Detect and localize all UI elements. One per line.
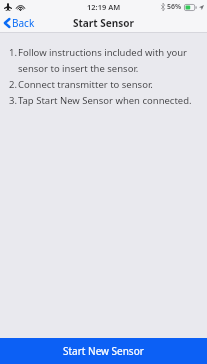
- staticText: Tap Start New Sensor when connected.: [18, 94, 192, 107]
- staticText: 1.: [9, 46, 17, 59]
- staticText: Connect transmitter to sensor.: [18, 78, 153, 91]
- staticText: Start New Sensor: [63, 344, 144, 358]
- staticText: Back: [12, 16, 35, 30]
- button[interactable]: Start New Sensor: [0, 338, 207, 364]
- staticText: Start Sensor: [73, 16, 134, 30]
- staticText: sensor to insert the sensor.: [18, 62, 139, 75]
- staticText: 56%: [167, 2, 182, 12]
- button[interactable]: Back: [0, 13, 43, 33]
- staticText: 2.: [9, 78, 17, 91]
- staticText: Follow instructions included with your: [18, 46, 188, 59]
- staticText: 12:19 AM: [87, 2, 121, 12]
- staticText: 3.: [9, 94, 17, 107]
